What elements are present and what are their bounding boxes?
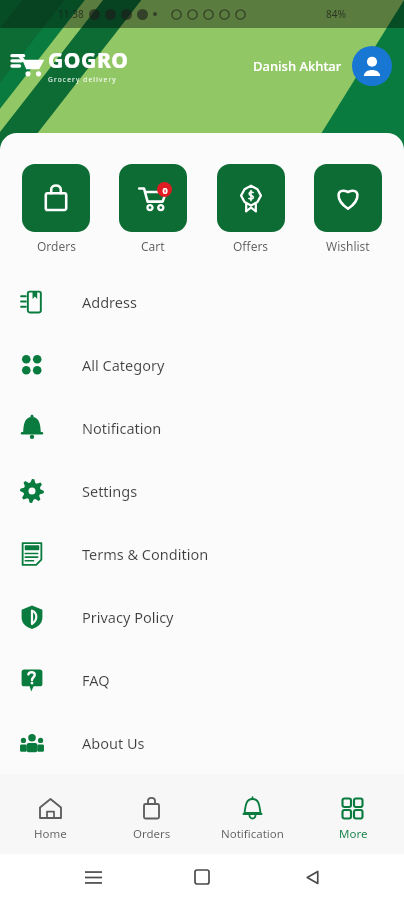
staticText: Grocery delivery	[48, 75, 117, 84]
button[interactable]: All Category	[0, 333, 404, 396]
staticText: Notification	[82, 418, 162, 438]
button[interactable]: Profile	[352, 46, 392, 86]
button[interactable]: Notification	[0, 396, 404, 459]
staticText: Privacy Policy	[82, 607, 174, 627]
staticText: Notification	[221, 826, 284, 842]
staticText: Orders	[37, 238, 76, 254]
button[interactable]: Settings	[0, 459, 404, 522]
staticText: GOGRO	[48, 46, 129, 75]
button[interactable]: Terms & Condition	[0, 522, 404, 585]
staticText: 0	[162, 184, 168, 196]
staticText: Cart	[141, 238, 165, 254]
staticText: FAQ	[82, 670, 110, 690]
button[interactable]: Back	[295, 860, 329, 894]
button[interactable]: Recents	[76, 860, 110, 894]
button[interactable]: About Us	[0, 711, 404, 774]
button[interactable]: Orders	[101, 784, 202, 854]
button[interactable]: Orders	[18, 164, 94, 254]
button[interactable]: Offers	[213, 164, 289, 254]
staticText: Danish Akhtar	[253, 57, 342, 75]
button[interactable]: 0	[115, 164, 191, 254]
staticText: Offers	[233, 238, 269, 254]
staticText: 11:38	[58, 7, 84, 21]
staticText: Wishlist	[326, 238, 370, 254]
staticText: Settings	[82, 481, 138, 501]
button[interactable]: Notification	[202, 784, 303, 854]
button[interactable]: Wishlist	[310, 164, 386, 254]
button[interactable]: Address	[0, 270, 404, 333]
staticText: About Us	[82, 733, 145, 753]
button[interactable]: More	[303, 784, 404, 854]
button[interactable]: Home	[0, 784, 101, 854]
staticText: Address	[82, 292, 137, 312]
staticText: Home	[34, 826, 67, 842]
staticText: All Category	[82, 355, 165, 375]
staticText: More	[339, 826, 368, 842]
button[interactable]: FAQ	[0, 648, 404, 711]
staticText: 84%	[326, 7, 346, 21]
button[interactable]: Home	[185, 860, 219, 894]
staticText: Orders	[133, 826, 171, 842]
staticText: Terms & Condition	[82, 544, 209, 564]
button[interactable]: Privacy Policy	[0, 585, 404, 648]
